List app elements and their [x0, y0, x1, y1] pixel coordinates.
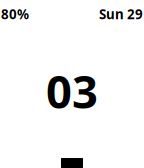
button[interactable]: 03 — [0, 71, 144, 111]
staticText: 03 — [46, 61, 98, 121]
staticText: 80% — [1, 5, 29, 23]
staticText: Sun 29 — [99, 5, 143, 23]
